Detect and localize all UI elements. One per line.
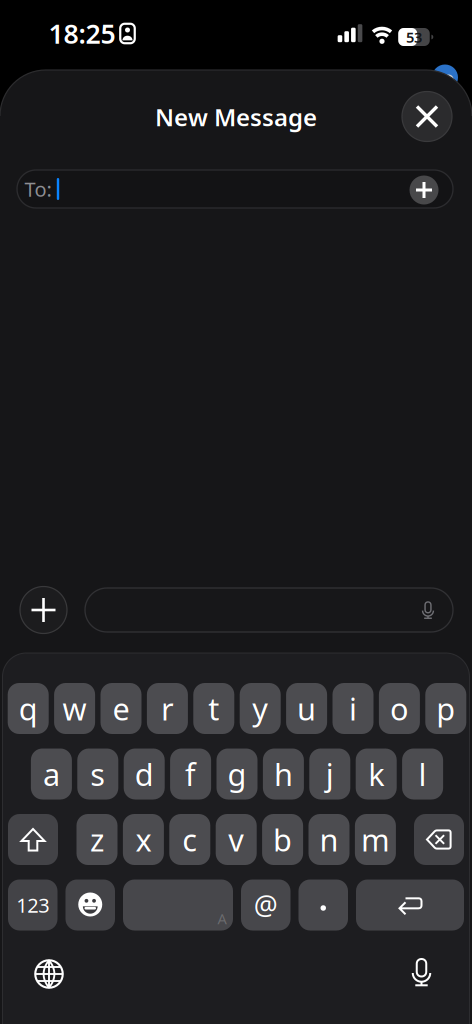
button[interactable]: t xyxy=(193,683,234,734)
button[interactable]: p xyxy=(425,683,466,734)
button[interactable]: g xyxy=(216,748,257,799)
staticText: j xyxy=(326,754,334,794)
button[interactable]: j xyxy=(309,748,350,799)
button[interactable]: a xyxy=(31,748,72,799)
staticText: @ xyxy=(254,887,278,923)
staticText: l xyxy=(419,754,427,794)
staticText: t xyxy=(208,688,219,729)
staticText: z xyxy=(90,819,104,860)
staticText: f xyxy=(185,754,196,794)
button[interactable]: s xyxy=(77,748,118,799)
button[interactable]: Apps xyxy=(20,586,67,633)
staticText: g xyxy=(227,754,246,794)
button[interactable]: e xyxy=(100,683,141,734)
button[interactable]: o xyxy=(379,683,420,734)
button[interactable]: Shift xyxy=(8,814,58,865)
button[interactable]: b xyxy=(262,814,303,865)
staticText: v xyxy=(228,819,244,860)
staticText: To: xyxy=(24,176,51,202)
staticText: p xyxy=(436,688,455,729)
staticText: 123 xyxy=(16,892,49,918)
button[interactable]: w xyxy=(54,683,95,734)
button[interactable]: return xyxy=(356,879,464,930)
button[interactable]: period xyxy=(298,879,348,930)
staticText: e xyxy=(112,688,129,729)
button[interactable]: space xyxy=(123,879,233,930)
button[interactable]: q xyxy=(8,683,49,734)
button[interactable]: Add Contact xyxy=(409,175,438,204)
button[interactable]: l xyxy=(402,748,443,799)
button[interactable]: y xyxy=(240,683,281,734)
staticText: c xyxy=(182,819,197,860)
button[interactable]: k xyxy=(356,748,397,799)
button[interactable]: n xyxy=(308,814,349,865)
button[interactable]: Delete xyxy=(414,814,464,865)
staticText: A xyxy=(217,909,226,928)
button[interactable]: r xyxy=(147,683,188,734)
button[interactable]: d xyxy=(124,748,165,799)
staticText: o xyxy=(390,688,409,729)
staticText: q xyxy=(19,688,38,729)
staticText: r xyxy=(161,688,174,729)
button[interactable]: Emoji xyxy=(65,879,115,930)
staticText: u xyxy=(297,688,316,729)
staticText: w xyxy=(63,688,87,729)
button[interactable]: @ xyxy=(241,879,290,930)
button[interactable]: f xyxy=(170,748,211,799)
button[interactable]: c xyxy=(169,814,210,865)
button[interactable]: Next Keyboard xyxy=(0,924,99,1024)
button[interactable]: v xyxy=(216,814,257,865)
staticText: m xyxy=(361,819,390,860)
staticText: s xyxy=(90,754,105,794)
staticText: 53 xyxy=(406,27,422,47)
staticText: New Message xyxy=(155,101,317,133)
button[interactable]: z xyxy=(76,814,117,865)
staticText: x xyxy=(135,819,151,860)
staticText: d xyxy=(135,754,154,794)
staticText: a xyxy=(43,754,60,794)
staticText: y xyxy=(252,688,268,729)
button[interactable]: 123 xyxy=(8,879,57,930)
button[interactable]: Message xyxy=(85,588,453,632)
button[interactable]: i xyxy=(332,683,373,734)
button[interactable]: m xyxy=(355,814,396,865)
button[interactable]: Dictation xyxy=(371,922,471,1022)
button[interactable]: h xyxy=(263,748,304,799)
button[interactable]: Close xyxy=(402,91,452,141)
staticText: k xyxy=(368,754,384,794)
staticText: h xyxy=(274,754,293,794)
staticText: i xyxy=(349,688,357,729)
button[interactable]: u xyxy=(286,683,327,734)
staticText: n xyxy=(319,819,338,860)
staticText: 18:25 xyxy=(48,16,115,51)
staticText: b xyxy=(273,819,292,860)
button[interactable]: x xyxy=(123,814,164,865)
